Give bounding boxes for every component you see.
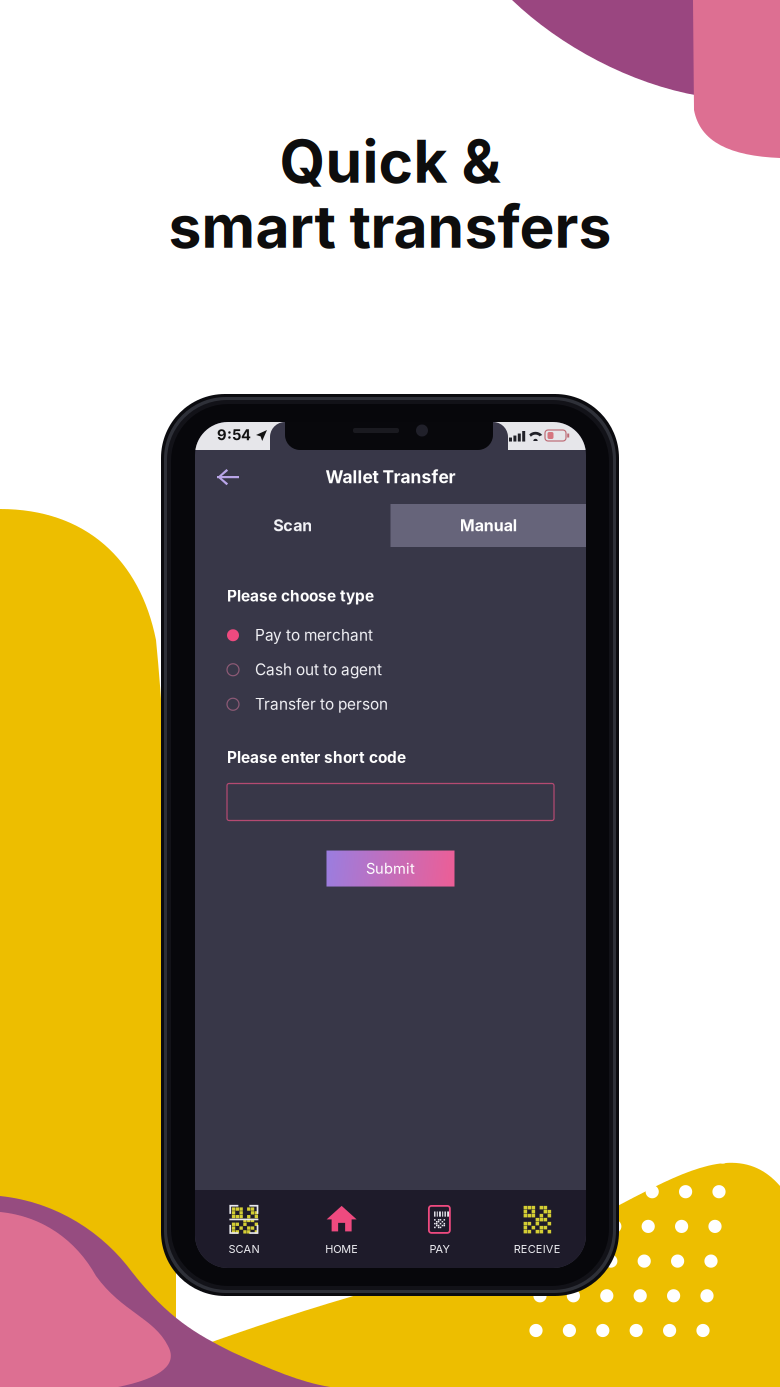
button[interactable]: Submit [326, 850, 454, 886]
staticText: Scan [273, 516, 312, 535]
button[interactable]: Pay to merchant [227, 618, 554, 652]
button[interactable]: Transfer to person [227, 687, 554, 721]
staticText: Please enter short code [227, 748, 406, 767]
staticText: RECEIVE [514, 1242, 561, 1256]
staticText: Cash out to agent [255, 660, 382, 679]
staticText: Manual [460, 516, 517, 535]
button[interactable]: HOME [293, 1194, 391, 1264]
button[interactable]: Manual [390, 504, 586, 547]
staticText: Pay to merchant [255, 626, 373, 645]
staticText: Wallet Transfer [325, 466, 455, 487]
staticText: Submit [366, 860, 415, 877]
staticText: smart transfers [168, 191, 611, 262]
staticText: Quick & [279, 126, 500, 197]
staticText: PAY [429, 1242, 449, 1256]
button[interactable]: RECEIVE [488, 1194, 586, 1264]
button[interactable]: PAY [390, 1194, 488, 1264]
staticText: SCAN [228, 1242, 259, 1256]
staticText: Transfer to person [255, 695, 388, 714]
button[interactable]: Cash out to agent [227, 652, 554, 687]
staticText: 9:54 [217, 426, 251, 444]
button[interactable]: Back [195, 454, 241, 500]
button[interactable]: Scan [195, 504, 390, 547]
button[interactable]: SCAN [195, 1194, 293, 1264]
staticText: Please choose type [227, 587, 374, 605]
staticText: HOME [325, 1242, 358, 1256]
